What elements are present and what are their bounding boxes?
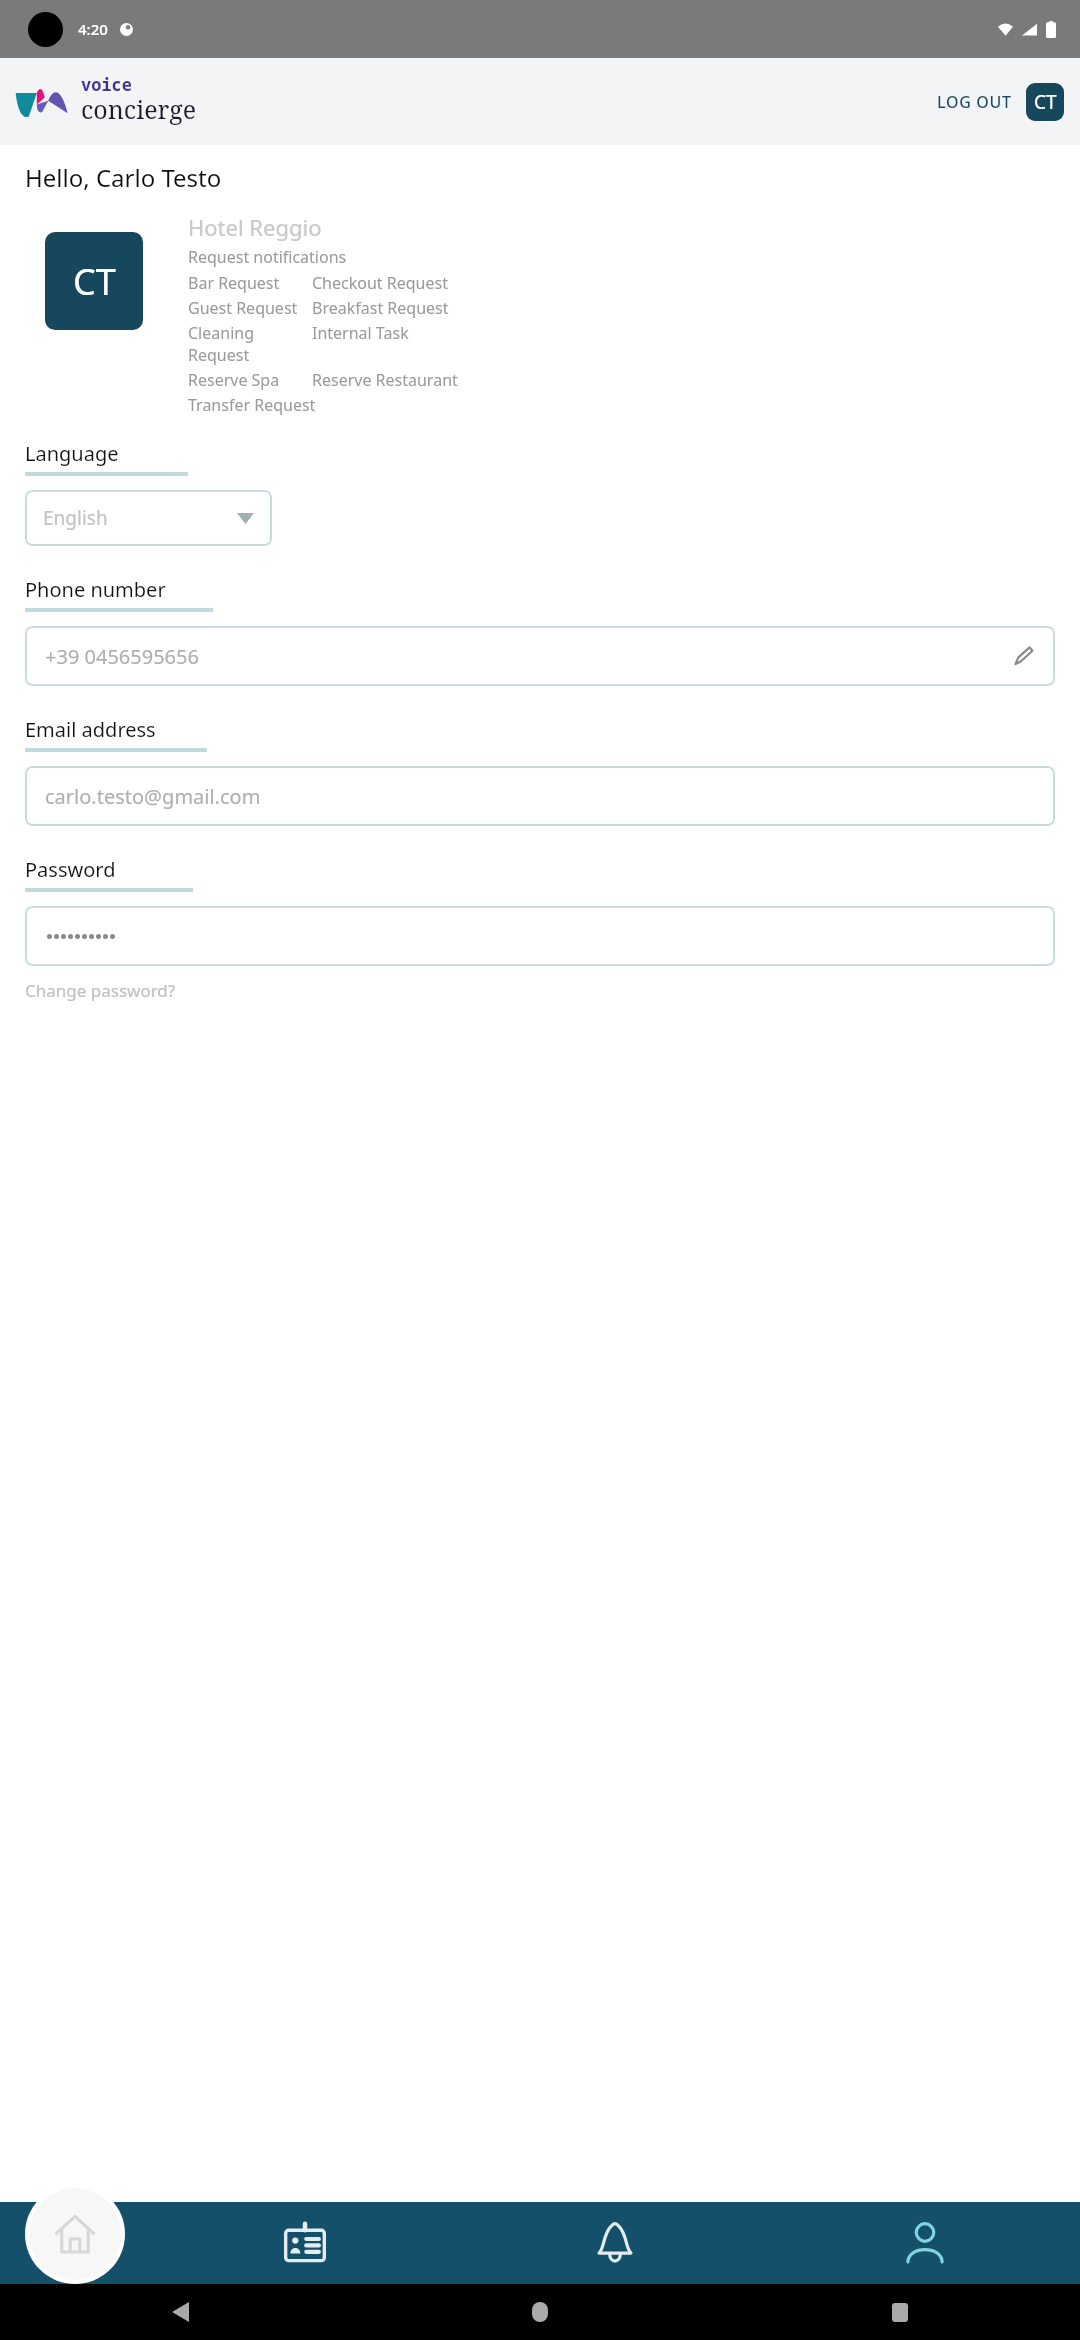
staticText: Checkout Request	[312, 272, 448, 294]
staticText: Request notifications	[188, 246, 347, 268]
staticText: English	[43, 505, 108, 531]
staticText: Guest Request	[188, 297, 312, 319]
button[interactable]: English	[25, 490, 272, 546]
staticText: Password	[25, 856, 116, 883]
staticText: Cleaning Request	[188, 322, 312, 366]
staticText: Breakfast Request	[312, 297, 449, 319]
staticText: Bar Request	[188, 272, 312, 294]
button[interactable]: Change password?	[25, 976, 176, 1005]
staticText: concierge	[81, 92, 197, 126]
staticText: CT	[73, 257, 116, 306]
staticText: Internal Task	[312, 322, 409, 344]
button[interactable]: +39 0456595656	[25, 626, 1055, 686]
staticText: Reserve Restaurant	[312, 369, 458, 391]
button[interactable]: Home	[360, 2284, 720, 2340]
button[interactable]: Profile	[770, 2202, 1080, 2284]
staticText: LOG OUT	[937, 91, 1012, 113]
staticText: 4:20	[78, 19, 108, 39]
button[interactable]	[25, 906, 1055, 966]
button[interactable]: LOG OUT	[931, 83, 1018, 121]
button[interactable]: User avatar	[45, 232, 143, 330]
staticText: Phone number	[25, 576, 166, 603]
staticText: Email address	[25, 716, 156, 743]
other: Edit phone number	[1014, 647, 1033, 666]
staticText: carlo.testo@gmail.com	[45, 783, 261, 810]
button[interactable]: Recent apps	[720, 2284, 1080, 2340]
staticText: Language	[25, 440, 119, 467]
button[interactable]: carlo.testo@gmail.com	[25, 766, 1055, 826]
staticText: +39 0456595656	[45, 643, 199, 670]
button[interactable]: Contacts	[150, 2202, 460, 2284]
button[interactable]: Profile avatar	[1026, 83, 1064, 121]
staticText: Hello, Carlo Testo	[25, 161, 222, 194]
staticText: Change password?	[25, 979, 176, 1002]
button[interactable]: Home	[25, 2184, 125, 2284]
button[interactable]: Back	[0, 2284, 360, 2340]
staticText: CT	[1034, 89, 1057, 115]
button[interactable]: Notifications	[460, 2202, 770, 2284]
staticText: Hotel Reggio	[188, 212, 322, 242]
staticText: Reserve Spa	[188, 369, 312, 391]
staticText: voice	[81, 73, 132, 96]
staticText: Transfer Request	[188, 394, 316, 416]
